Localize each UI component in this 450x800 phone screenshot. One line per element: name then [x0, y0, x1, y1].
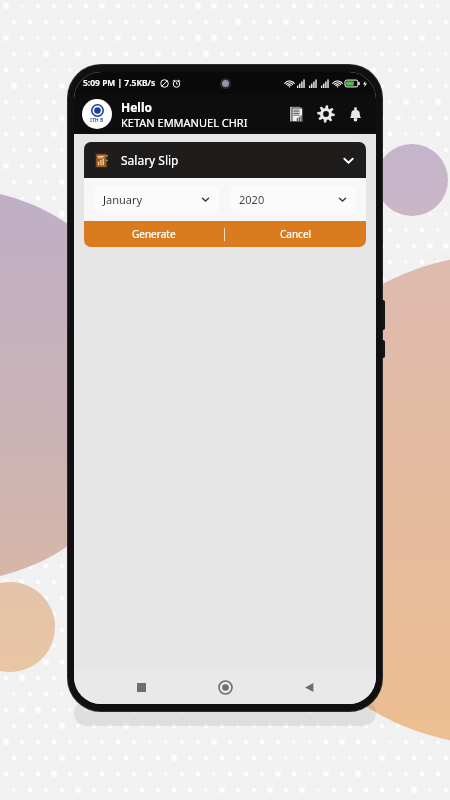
- staticText: Generate: [132, 227, 176, 241]
- staticText: January: [103, 192, 143, 207]
- button[interactable]: ITH B: [82, 99, 112, 129]
- button[interactable]: Generate: [84, 221, 224, 247]
- button[interactable]: Recent apps: [124, 670, 158, 704]
- staticText: Salary Slip: [121, 152, 179, 168]
- staticText: ITH B: [90, 117, 104, 124]
- button[interactable]: January: [94, 186, 219, 213]
- button[interactable]: Salary Slip: [84, 142, 366, 178]
- staticText: 2020: [239, 192, 265, 207]
- staticText: KETAN EMMANUEL CHRI: [121, 115, 248, 130]
- staticText: 5:09 PM | 7.5KB/s: [83, 77, 156, 89]
- button[interactable]: Home: [208, 670, 242, 704]
- staticText: Cancel: [280, 227, 312, 241]
- button[interactable]: Cancel: [225, 221, 366, 247]
- button[interactable]: Notifications: [342, 101, 368, 127]
- button[interactable]: Settings: [313, 101, 339, 127]
- button[interactable]: 2020: [230, 186, 356, 213]
- button[interactable]: Reports: [284, 101, 310, 127]
- button[interactable]: Back: [292, 670, 326, 704]
- staticText: Hello: [121, 99, 152, 115]
